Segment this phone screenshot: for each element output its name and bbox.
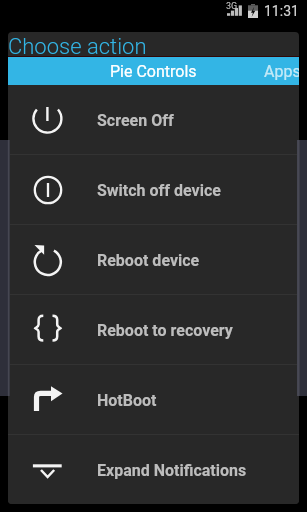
button[interactable]: Pie Controls [70,57,237,85]
button[interactable]: HotBoot [8,365,299,434]
staticText: 3G [226,1,238,12]
staticText: Expand Notifications [97,461,247,480]
button[interactable]: Expand Notifications [8,435,299,504]
staticText: Screen Off [97,111,174,130]
staticText: Reboot to recovery [97,321,233,340]
button[interactable]: Reboot to recovery [8,295,299,364]
button[interactable]: Switch off device [8,155,299,224]
button[interactable]: Reboot device [8,225,299,294]
button[interactable]: Screen Off [8,85,299,154]
staticText: 11:31 [264,3,299,19]
staticText: Apps [264,62,299,81]
staticText: Reboot device [97,251,200,270]
staticText: Switch off device [97,181,221,200]
staticText: Pie Controls [110,62,197,81]
staticText: HotBoot [97,391,157,410]
button[interactable]: Apps [238,57,299,85]
staticText: Choose action [8,34,147,58]
